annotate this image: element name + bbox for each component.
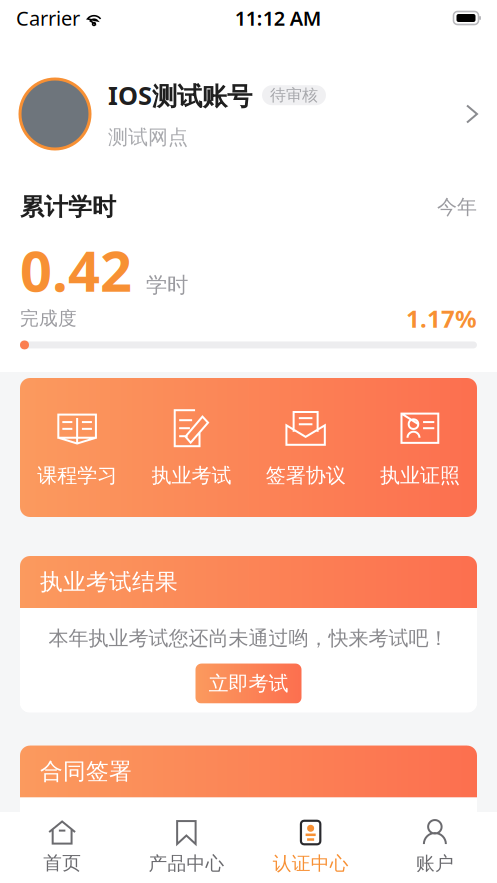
staticText: 执业证照: [380, 463, 460, 488]
staticText: 11:12 AM: [235, 5, 322, 31]
staticText: 累计学时: [20, 192, 116, 222]
staticText: 首页: [43, 851, 81, 874]
staticText: 立即考试: [208, 671, 288, 696]
button[interactable]: 立即考试: [195, 664, 301, 704]
button[interactable]: 签署协议: [248, 407, 363, 488]
button[interactable]: 执业证照: [363, 407, 477, 488]
staticText: 1.17%: [406, 303, 477, 334]
staticText: 本年执业考试您还尚未通过哟，快来考试吧！: [48, 626, 448, 651]
staticText: 执业考试: [151, 463, 231, 488]
staticText: IOS测试账号: [108, 78, 252, 112]
button[interactable]: 执业考试: [134, 407, 248, 488]
staticText: 完成度: [20, 307, 77, 330]
staticText: 今年: [437, 195, 477, 219]
staticText: 学时: [146, 272, 188, 298]
staticText: 产品中心: [148, 852, 224, 875]
button[interactable]: 产品中心: [124, 820, 248, 875]
button[interactable]: 认证中心: [248, 820, 373, 875]
staticText: 认证中心: [273, 852, 349, 875]
staticText: 合同签署: [40, 758, 132, 785]
staticText: 执业考试结果: [40, 568, 178, 596]
staticText: 待审核: [270, 85, 318, 105]
staticText: 签署协议: [266, 463, 346, 488]
staticText: 课程学习: [37, 463, 117, 488]
button[interactable]: IOS测试账号: [0, 36, 497, 178]
staticText: 测试网点: [108, 125, 188, 150]
staticText: 账户: [416, 852, 454, 875]
button[interactable]: 账户: [373, 820, 497, 875]
staticText: Carrier: [16, 5, 80, 31]
staticText: 0.42: [20, 233, 132, 307]
button[interactable]: 课程学习: [20, 407, 134, 488]
button[interactable]: 首页: [0, 820, 124, 874]
